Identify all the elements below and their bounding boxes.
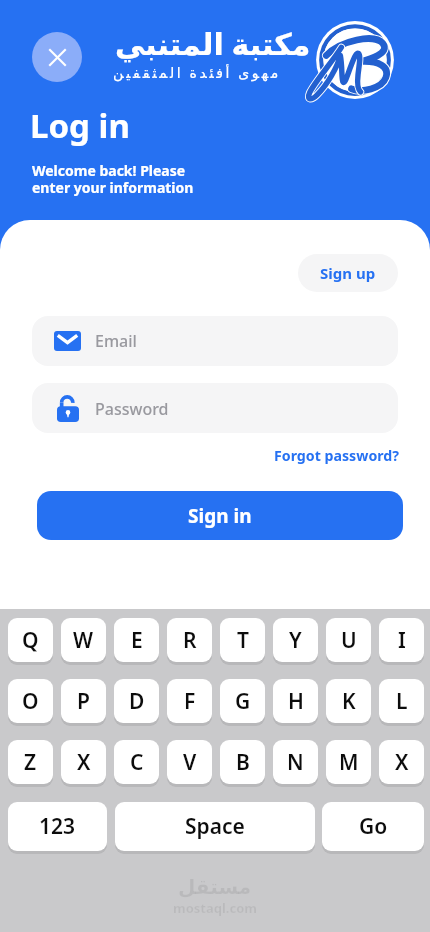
staticText: I bbox=[398, 626, 406, 655]
button[interactable]: Space bbox=[115, 802, 315, 851]
staticText: Q bbox=[22, 626, 39, 655]
button[interactable]: 123 bbox=[8, 802, 107, 851]
button[interactable]: W bbox=[61, 618, 106, 662]
button[interactable]: U bbox=[326, 618, 371, 662]
button[interactable]: H bbox=[273, 679, 318, 723]
button[interactable]: C bbox=[114, 740, 159, 784]
button[interactable]: R bbox=[167, 618, 212, 662]
staticText: R bbox=[183, 626, 197, 655]
button[interactable]: D bbox=[114, 679, 159, 723]
staticText: L bbox=[396, 687, 408, 716]
staticText: Sign up bbox=[320, 263, 376, 283]
button[interactable]: G bbox=[220, 679, 265, 723]
button[interactable]: V bbox=[167, 740, 212, 784]
staticText: مهوى أفئدة المثقفين bbox=[113, 63, 281, 82]
staticText: F bbox=[184, 687, 196, 716]
staticText: Password bbox=[95, 398, 169, 420]
button[interactable]: E bbox=[114, 618, 159, 662]
staticText: 123 bbox=[39, 812, 76, 841]
button[interactable]: I bbox=[379, 618, 424, 662]
staticText: W bbox=[73, 626, 94, 655]
staticText: Z bbox=[24, 748, 37, 777]
button[interactable]: L bbox=[379, 679, 424, 723]
staticText: U bbox=[341, 626, 357, 655]
staticText: Forgot password? bbox=[274, 446, 400, 465]
staticText: Space bbox=[185, 812, 245, 841]
staticText: B bbox=[236, 748, 250, 777]
staticText: mostaql.com bbox=[173, 899, 258, 917]
button[interactable]: Sign up bbox=[298, 254, 398, 292]
button[interactable]: Email bbox=[32, 316, 398, 366]
staticText: E bbox=[131, 626, 143, 655]
staticText: Go bbox=[359, 812, 388, 841]
staticText: K bbox=[342, 687, 356, 716]
button[interactable]: Close bbox=[32, 32, 82, 82]
staticText: Email bbox=[95, 330, 137, 352]
button[interactable]: K bbox=[326, 679, 371, 723]
button[interactable]: Go bbox=[322, 802, 424, 851]
staticText: C bbox=[130, 748, 144, 777]
staticText: D bbox=[129, 687, 145, 716]
staticText: O bbox=[22, 687, 39, 716]
button[interactable]: Z bbox=[8, 740, 53, 784]
staticText: Log in bbox=[30, 103, 130, 148]
staticText: G bbox=[235, 687, 251, 716]
staticText: M bbox=[339, 748, 359, 777]
button[interactable]: T bbox=[220, 618, 265, 662]
staticText: V bbox=[183, 748, 197, 777]
button[interactable]: X bbox=[379, 740, 424, 784]
button[interactable]: B bbox=[220, 740, 265, 784]
staticText: مكتبة المتنبي bbox=[115, 23, 311, 64]
button[interactable]: Sign in bbox=[37, 491, 403, 540]
staticText: T bbox=[237, 626, 249, 655]
staticText: X bbox=[77, 748, 91, 777]
staticText: N bbox=[287, 748, 304, 777]
button[interactable]: F bbox=[167, 679, 212, 723]
staticText: Sign in bbox=[188, 503, 252, 529]
button[interactable]: Q bbox=[8, 618, 53, 662]
staticText: X bbox=[395, 748, 409, 777]
button[interactable]: N bbox=[273, 740, 318, 784]
button[interactable]: Y bbox=[273, 618, 318, 662]
staticText: Y bbox=[289, 626, 302, 655]
button[interactable]: Password bbox=[32, 383, 398, 433]
button[interactable]: O bbox=[8, 679, 53, 723]
staticText: P bbox=[77, 687, 90, 716]
button[interactable]: X bbox=[61, 740, 106, 784]
staticText: Welcome back! Please enter your informat… bbox=[32, 161, 194, 197]
button[interactable]: Forgot password? bbox=[274, 446, 400, 465]
button[interactable]: M bbox=[326, 740, 371, 784]
staticText: H bbox=[288, 687, 304, 716]
staticText: مستقل bbox=[178, 875, 252, 898]
button[interactable]: P bbox=[61, 679, 106, 723]
